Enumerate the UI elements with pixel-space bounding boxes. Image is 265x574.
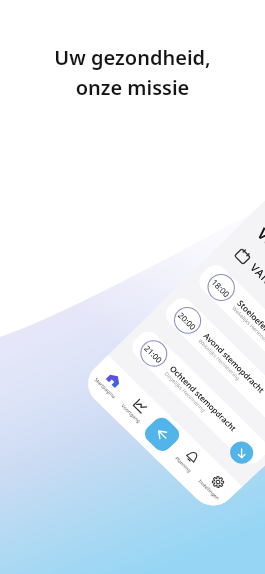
staticText: Wekelijks Herinnering	[230, 305, 265, 349]
button[interactable]: Startpagina	[90, 362, 131, 402]
button[interactable]: Scroll down	[225, 437, 258, 468]
staticText: Voortgang	[253, 223, 265, 295]
staticText: Instellingen	[197, 478, 221, 501]
button[interactable]: Opname starten	[141, 414, 183, 455]
staticText: Dagelijks Herinnering	[163, 370, 207, 414]
staticText: Planning	[174, 455, 193, 473]
staticText: Ochtend stemopdracht	[168, 363, 239, 433]
staticText: Wekelijks Herinnering	[197, 338, 241, 382]
staticText: VANDAAG	[248, 260, 265, 311]
button[interactable]: 20:00	[161, 293, 265, 437]
staticText: Uw gezondheid, onze missie	[54, 44, 211, 101]
staticText: 18:00	[210, 277, 233, 300]
button[interactable]: Voortgang	[117, 388, 157, 428]
staticText: 20:00	[176, 310, 199, 332]
button[interactable]: Planning	[169, 439, 209, 478]
staticText: 21:00	[142, 343, 165, 365]
button[interactable]: 21:00	[127, 327, 265, 468]
button[interactable]: 18:00	[194, 260, 265, 405]
button[interactable]: Instellingen	[194, 464, 235, 503]
staticText: Startpagina	[94, 376, 118, 400]
staticText: Voortgang	[120, 402, 142, 424]
staticText: Stoeloefening	[235, 297, 265, 343]
staticText: Avond stemopdracht	[202, 330, 265, 395]
